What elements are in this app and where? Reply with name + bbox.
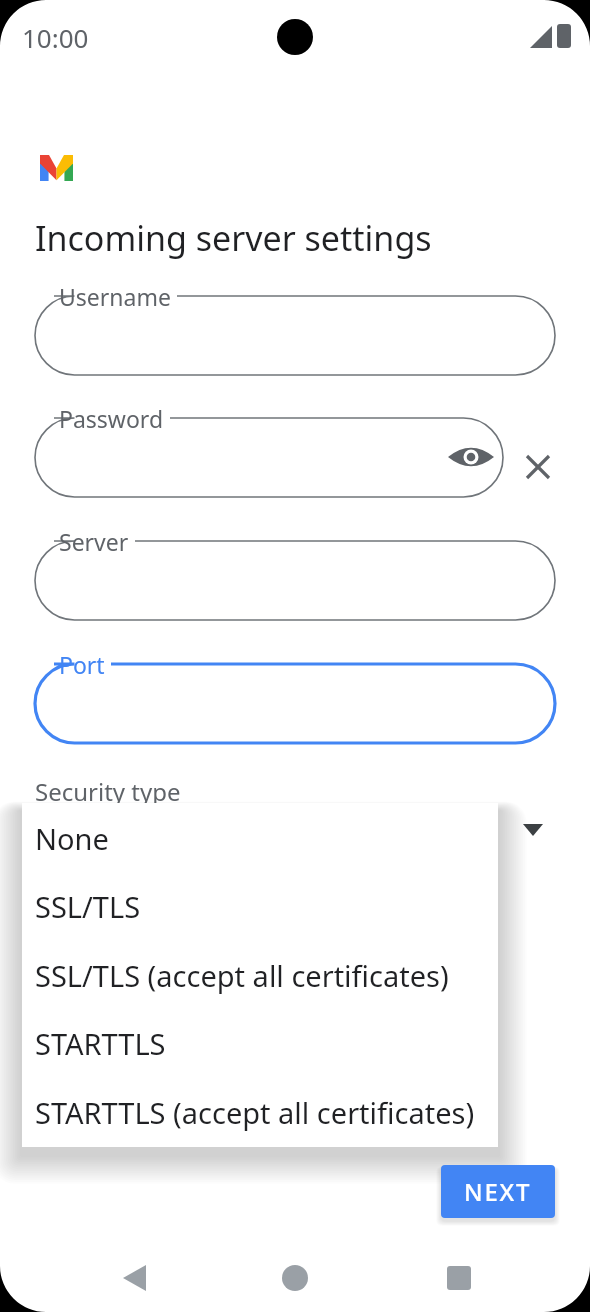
- button[interactable]: Open security type dropdown: [511, 807, 557, 853]
- button[interactable]: STARTTLS (accept all certificates): [22, 1079, 498, 1147]
- button[interactable]: Show password: [449, 435, 495, 481]
- button[interactable]: STARTTLS: [22, 1010, 498, 1079]
- button[interactable]: Port field: [35, 664, 555, 743]
- button[interactable]: Password field: [35, 418, 503, 497]
- button[interactable]: Username field: [35, 296, 555, 375]
- button[interactable]: SSL/TLS: [22, 872, 498, 941]
- button[interactable]: Clear password: [515, 444, 561, 490]
- button[interactable]: SSL/TLS (accept all certificates): [22, 941, 498, 1010]
- button[interactable]: Back: [110, 1254, 158, 1302]
- button[interactable]: NEXT: [441, 1165, 555, 1218]
- button[interactable]: None: [22, 803, 498, 872]
- button[interactable]: Server field: [35, 541, 555, 620]
- button[interactable]: Home: [271, 1254, 319, 1302]
- button[interactable]: Recents: [435, 1254, 483, 1302]
